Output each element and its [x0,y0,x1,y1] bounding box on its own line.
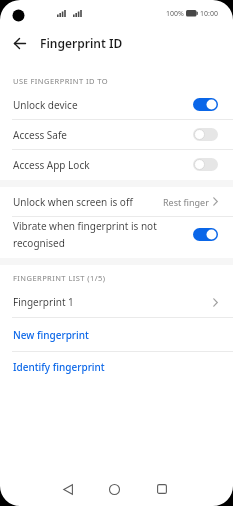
staticText: Access Safe [13,128,67,142]
staticText: New fingerprint [13,328,89,342]
staticText: USE FINGERPRINT ID TO [13,76,109,86]
button[interactable]: Access App Lock [0,150,233,179]
button[interactable]: Vibrate when fingerprint is not [0,217,233,256]
staticText: Fingerprint ID [40,35,123,51]
staticText: Unlock device [13,98,78,112]
staticText: Identify fingerprint [13,360,105,374]
button[interactable] [7,30,33,56]
button[interactable]: Unlock when screen is off [0,187,233,216]
button[interactable]: New fingerprint [0,318,233,351]
staticText: Fingerprint 1 [13,295,74,309]
button[interactable] [138,476,185,502]
button[interactable] [44,476,91,502]
staticText: Unlock when screen is off [13,195,133,209]
button[interactable]: Access Safe [0,120,233,149]
staticText: 100% [166,9,184,19]
button[interactable]: Fingerprint 1 [0,287,233,317]
staticText: 10:00 [200,9,218,19]
button[interactable] [91,476,138,502]
staticText: recognised [13,236,65,250]
button[interactable]: Identify fingerprint [0,352,233,382]
staticText: Access App Lock [13,158,90,172]
button[interactable]: Unlock device [0,90,233,119]
staticText: Vibrate when fingerprint is not [13,219,157,233]
staticText: Rest finger [163,196,209,208]
staticText: FINGERPRINT LIST (1/5) [13,273,106,283]
